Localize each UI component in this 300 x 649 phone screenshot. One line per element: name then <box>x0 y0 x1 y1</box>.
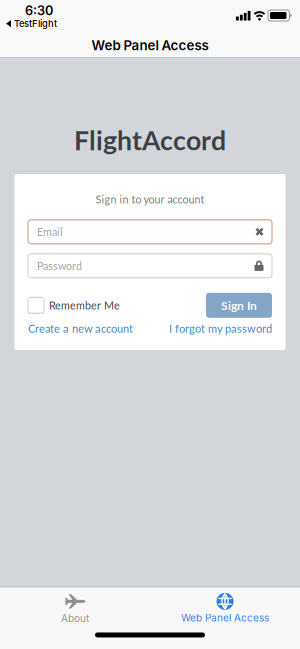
button[interactable]: Web Panel Access <box>150 588 300 624</box>
staticText: Sign In <box>221 298 257 312</box>
staticText: Email <box>37 225 63 238</box>
staticText: I forgot my password <box>169 322 272 335</box>
button[interactable]: About <box>0 587 150 624</box>
button[interactable]: Password <box>28 254 272 278</box>
staticText: Remember Me <box>49 299 120 312</box>
staticText: Create a new account <box>28 322 133 335</box>
staticText: TestFlight <box>14 18 57 29</box>
button[interactable]: Create a new account <box>28 322 133 335</box>
button[interactable]: Email <box>28 220 272 244</box>
button[interactable]: I forgot my password <box>169 322 272 335</box>
staticText: FlightAccord <box>74 124 226 156</box>
staticText: 6:30 <box>25 3 53 18</box>
button[interactable]: Back to TestFlight <box>0 0 57 29</box>
staticText: About <box>61 612 89 624</box>
staticText: Password <box>37 259 82 272</box>
staticText: Web Panel Access <box>91 37 208 53</box>
button[interactable]: Sign In <box>206 293 272 318</box>
staticText: Sign in to your account <box>95 193 204 206</box>
button[interactable]: Remember Me <box>28 297 120 313</box>
staticText: Web Panel Access <box>181 612 269 624</box>
